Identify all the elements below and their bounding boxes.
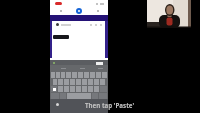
button[interactable]: Create: [76, 8, 82, 14]
button[interactable]: [52, 21, 105, 28]
button[interactable]: Logo: [55, 2, 62, 5]
button[interactable]: Paste menu: [53, 35, 69, 39]
staticText: Then tap 'Paste': [85, 101, 135, 109]
button[interactable]: Back: [56, 103, 59, 106]
button[interactable]: Shift: [51, 86, 57, 92]
